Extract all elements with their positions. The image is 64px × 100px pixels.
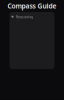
staticText: Compass Guide xyxy=(7,2,56,10)
staticText: Reasoning xyxy=(15,14,32,19)
